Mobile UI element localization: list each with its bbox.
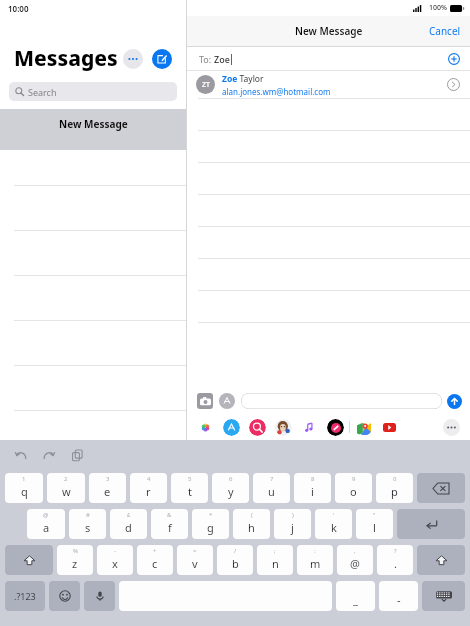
button[interactable]: Digital Touch [327, 419, 344, 436]
staticText: 8 [311, 475, 315, 483]
staticText: £ [127, 511, 131, 519]
staticText: m [310, 556, 321, 571]
button[interactable]: Undo [12, 446, 30, 464]
staticText: 2 [64, 475, 68, 483]
staticText: y [228, 484, 234, 499]
staticText: 3 [106, 475, 110, 483]
staticText: o [350, 484, 357, 499]
button[interactable]: Cancel [420, 19, 470, 43]
button[interactable]: Google Maps [355, 419, 372, 436]
button[interactable]: 3 [89, 473, 126, 503]
staticText: a [43, 520, 50, 535]
button[interactable]: More [123, 49, 143, 69]
button[interactable]: Details [447, 78, 460, 91]
button[interactable]: Images [249, 419, 266, 436]
staticText: t [188, 484, 192, 499]
button[interactable]: Shift [5, 545, 53, 575]
button[interactable]: Numbers [5, 581, 45, 611]
staticText: " [373, 511, 376, 519]
staticText: - [397, 592, 401, 607]
button[interactable]: App Store [223, 419, 240, 436]
button[interactable]: * [192, 509, 229, 539]
staticText: . [394, 556, 397, 571]
button[interactable]: Send [447, 394, 462, 409]
button[interactable]: 7 [253, 473, 290, 503]
button[interactable]: 8 [294, 473, 331, 503]
button[interactable]: Redo [40, 446, 58, 464]
button[interactable]: ) [274, 509, 311, 539]
staticText: ) [292, 511, 294, 519]
staticText: x [112, 556, 118, 571]
button[interactable]: 2 [47, 473, 85, 503]
staticText: 100% [429, 3, 447, 13]
staticText: Search [28, 86, 57, 98]
button[interactable]: 5 [171, 473, 208, 503]
button[interactable]: + [137, 545, 173, 575]
button[interactable]: Hide keyboard [422, 581, 465, 611]
button[interactable]: To: [187, 47, 470, 70]
staticText: Zoe Taylor [222, 73, 264, 85]
button[interactable]: YouTube [381, 419, 398, 436]
button[interactable]: _ [336, 581, 375, 611]
staticText: Messages [14, 44, 118, 73]
button[interactable]: ? [377, 545, 413, 575]
button[interactable]: New Message [152, 49, 172, 69]
button[interactable]: 1 [5, 473, 43, 503]
staticText: & [167, 511, 172, 519]
button[interactable] [241, 393, 442, 409]
staticText: alan.jones.wm@hotmail.com [222, 86, 331, 97]
button[interactable]: / [217, 545, 253, 575]
button[interactable]: Shift [417, 545, 465, 575]
button[interactable]: 6 [212, 473, 249, 503]
staticText: h [248, 520, 255, 535]
staticText: i [311, 484, 314, 499]
button[interactable]: Music [301, 419, 318, 436]
staticText: Zoe [214, 53, 230, 65]
button[interactable]: Emoji [49, 581, 80, 611]
button[interactable]: £ [110, 509, 147, 539]
button[interactable]: 9 [335, 473, 372, 503]
button[interactable]: " [356, 509, 393, 539]
button[interactable]: Return [397, 509, 465, 539]
button[interactable]: Delete [417, 473, 465, 503]
staticText: New Message [295, 24, 363, 38]
button[interactable]: & [151, 509, 188, 539]
button[interactable]: App Store [219, 393, 235, 409]
button[interactable]: Memoji [275, 419, 292, 436]
button[interactable]: Camera [197, 393, 213, 409]
staticText: r [146, 484, 151, 499]
staticText: e [104, 484, 111, 499]
staticText: w [62, 484, 71, 499]
staticText: # [86, 511, 90, 519]
button[interactable]: Add contact [448, 53, 460, 65]
staticText: p [391, 484, 398, 499]
button[interactable]: = [177, 545, 213, 575]
button[interactable]: New Message [0, 109, 186, 150]
button[interactable]: ( [233, 509, 270, 539]
button[interactable]: Search [9, 82, 177, 101]
staticText: 5 [188, 475, 192, 483]
button[interactable]: , [337, 545, 373, 575]
button[interactable]: : [297, 545, 333, 575]
button[interactable]: Paste [68, 446, 86, 464]
staticText: - [114, 547, 116, 555]
button[interactable]: # [69, 509, 106, 539]
button[interactable]: Dictate [84, 581, 115, 611]
button[interactable]: ' [315, 509, 352, 539]
button[interactable]: Photos [197, 419, 214, 436]
button[interactable]: 0 [376, 473, 413, 503]
button[interactable]: 4 [130, 473, 167, 503]
staticText: v [192, 556, 198, 571]
button[interactable]: % [57, 545, 93, 575]
button[interactable]: More apps [443, 419, 460, 436]
staticText: ; [274, 547, 276, 555]
button[interactable]: - [97, 545, 133, 575]
button[interactable]: ZT [187, 71, 470, 98]
staticText: n [272, 556, 279, 571]
staticText: , [354, 547, 356, 555]
button[interactable]: @ [27, 509, 65, 539]
staticText: * [209, 511, 213, 519]
button[interactable]: ; [257, 545, 293, 575]
button[interactable]: - [379, 581, 418, 611]
